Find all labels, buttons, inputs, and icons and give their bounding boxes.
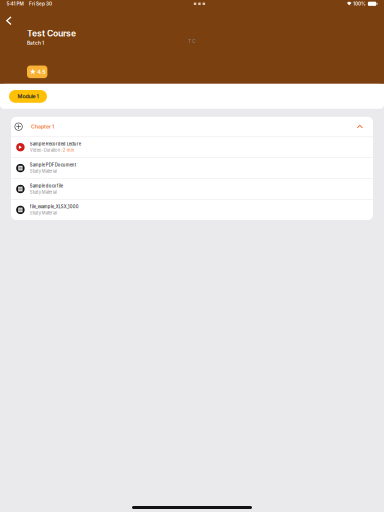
staticText: Chapter 1 xyxy=(31,123,54,130)
button[interactable]: Sample Recorded Lecture xyxy=(11,137,373,157)
staticText: Study Material xyxy=(30,210,57,216)
button[interactable]: Back xyxy=(0,13,20,28)
button[interactable]: file_example_XLSX_1000 xyxy=(11,200,373,220)
button[interactable]: Chapter 1 xyxy=(11,117,373,136)
staticText: Video-Duration : xyxy=(30,148,63,153)
staticText: Study Material xyxy=(30,190,57,195)
button[interactable]: Module 1 xyxy=(9,90,47,103)
staticText: ★ xyxy=(29,68,36,76)
staticText: Test Course xyxy=(27,28,76,39)
staticText: 2 min xyxy=(63,148,74,153)
staticText: 5:41 PM xyxy=(6,1,23,7)
staticText: 4.5 xyxy=(37,69,45,75)
staticText: T C xyxy=(188,38,196,44)
staticText: Fri Sep 30 xyxy=(29,1,52,7)
staticText: file_example_XLSX_1000 xyxy=(30,204,79,209)
staticText: Sample Recorded Lecture xyxy=(30,141,81,147)
button[interactable]: Sample PDF Document xyxy=(11,158,373,178)
staticText: Batch 1 xyxy=(27,40,44,46)
staticText: Study Material xyxy=(30,169,57,174)
button[interactable]: Sample docx file xyxy=(11,179,373,199)
staticText: Module 1 xyxy=(17,93,38,100)
staticText: Sample docx file xyxy=(30,183,63,188)
staticText: 100% xyxy=(353,1,366,7)
staticText: Sample PDF Document xyxy=(30,162,76,167)
